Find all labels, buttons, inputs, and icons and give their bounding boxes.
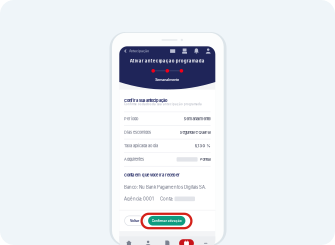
staticText: 6,130 % — [195, 143, 211, 148]
staticText: Semanalmente — [184, 116, 211, 121]
button[interactable]: Voltar — [125, 216, 144, 226]
button[interactable]: Extrato — [158, 239, 177, 245]
staticText: Adquirentes — [124, 157, 144, 162]
button[interactable]: Maquininhas — [179, 48, 190, 54]
staticText: Dias escolhidos — [124, 130, 151, 135]
button[interactable]: Agenda — [177, 239, 196, 245]
button[interactable]: Confirmar ativação — [148, 216, 185, 226]
staticText: Pontta — [200, 157, 211, 162]
button[interactable]: Mais — [196, 239, 215, 245]
button[interactable]: Clientes — [138, 239, 158, 245]
staticText: Confira sua antecipação — [124, 98, 167, 103]
button[interactable]: Perfil — [202, 48, 214, 54]
button[interactable]: Início — [119, 239, 138, 245]
button[interactable]: Antecipação — [119, 47, 149, 55]
staticText: Conta em que você irá receber — [124, 173, 180, 177]
button[interactable]: Notificações — [190, 48, 202, 54]
staticText: Taxa aplicada ao dia — [124, 143, 158, 148]
staticText: Período — [124, 116, 138, 121]
staticText: Antecipação — [129, 49, 149, 53]
staticText: Banco: Nu Bank Pagamentos Digitais SA. — [124, 185, 206, 190]
staticText: Confirmar ativação — [152, 219, 182, 223]
staticText: Agência: 0001 — [124, 196, 154, 201]
staticText: Ativar antecipação programada — [130, 58, 205, 64]
staticText: Confirme os dados da sua antecipação pro… — [124, 102, 202, 106]
staticText: Semanalmente — [155, 77, 179, 82]
staticText: Voltar — [130, 219, 139, 223]
staticText: Segunda e Quarta — [180, 130, 211, 135]
staticText: Conta: — [160, 196, 173, 201]
button[interactable]: Cartões — [167, 48, 179, 54]
